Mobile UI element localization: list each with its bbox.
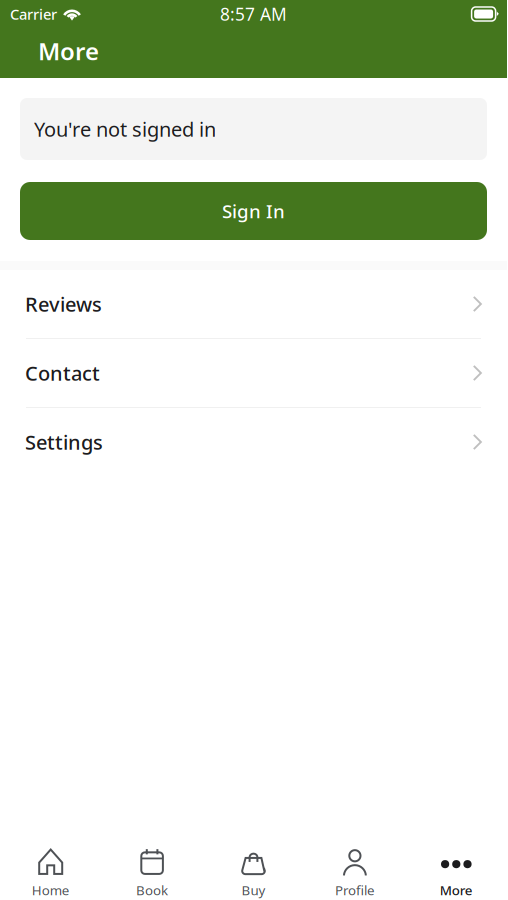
staticText: Reviews	[25, 291, 102, 317]
staticText: 8:57 AM	[220, 2, 287, 25]
button[interactable]: Home	[0, 838, 101, 900]
button[interactable]: Buy	[203, 838, 304, 900]
staticText: Contact	[25, 360, 100, 386]
staticText: Buy	[241, 881, 265, 899]
staticText: Settings	[25, 429, 103, 455]
button[interactable]: Sign In	[20, 182, 487, 240]
staticText: More	[38, 35, 99, 67]
staticText: Home	[32, 881, 70, 899]
button[interactable]: Book	[101, 838, 203, 900]
staticText: Carrier	[10, 4, 57, 24]
staticText: You're not signed in	[34, 116, 216, 142]
button[interactable]: Reviews	[0, 270, 507, 338]
staticText: Profile	[335, 881, 375, 899]
staticText: Book	[136, 881, 168, 899]
button[interactable]: More	[406, 838, 507, 900]
button[interactable]: Settings	[0, 408, 507, 476]
staticText: Sign In	[222, 199, 285, 223]
staticText: More	[440, 881, 473, 899]
button[interactable]: Profile	[304, 838, 406, 900]
button[interactable]: Contact	[0, 339, 507, 407]
